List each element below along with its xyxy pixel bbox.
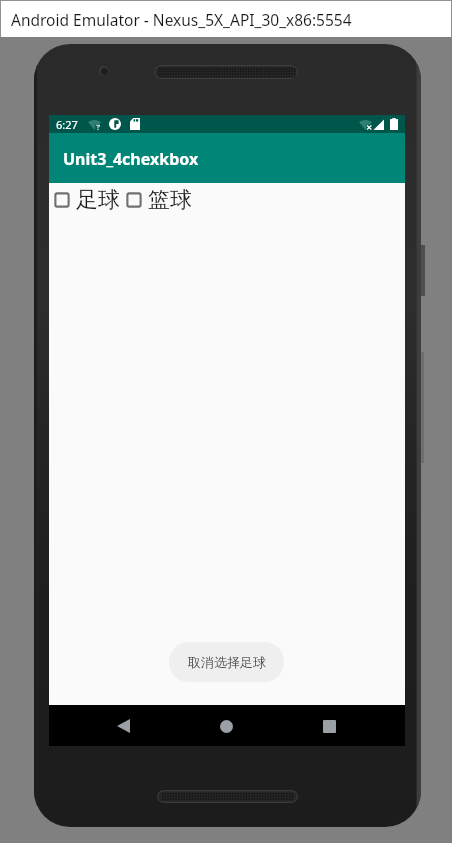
button[interactable]: Back xyxy=(97,706,149,746)
button[interactable]: 篮球 xyxy=(126,186,192,214)
staticText: 足球 xyxy=(76,186,120,214)
staticText: 篮球 xyxy=(148,186,192,214)
button[interactable]: Recent apps xyxy=(303,706,355,746)
staticText: 取消选择足球 xyxy=(188,654,266,670)
staticText: Android Emulator - Nexus_5X_API_30_x86:5… xyxy=(11,9,352,30)
button[interactable]: Home xyxy=(200,706,252,746)
button[interactable]: 足球 xyxy=(54,186,120,214)
staticText: Unit3_4chexkbox xyxy=(63,148,199,170)
staticText: 6:27 xyxy=(56,117,78,132)
